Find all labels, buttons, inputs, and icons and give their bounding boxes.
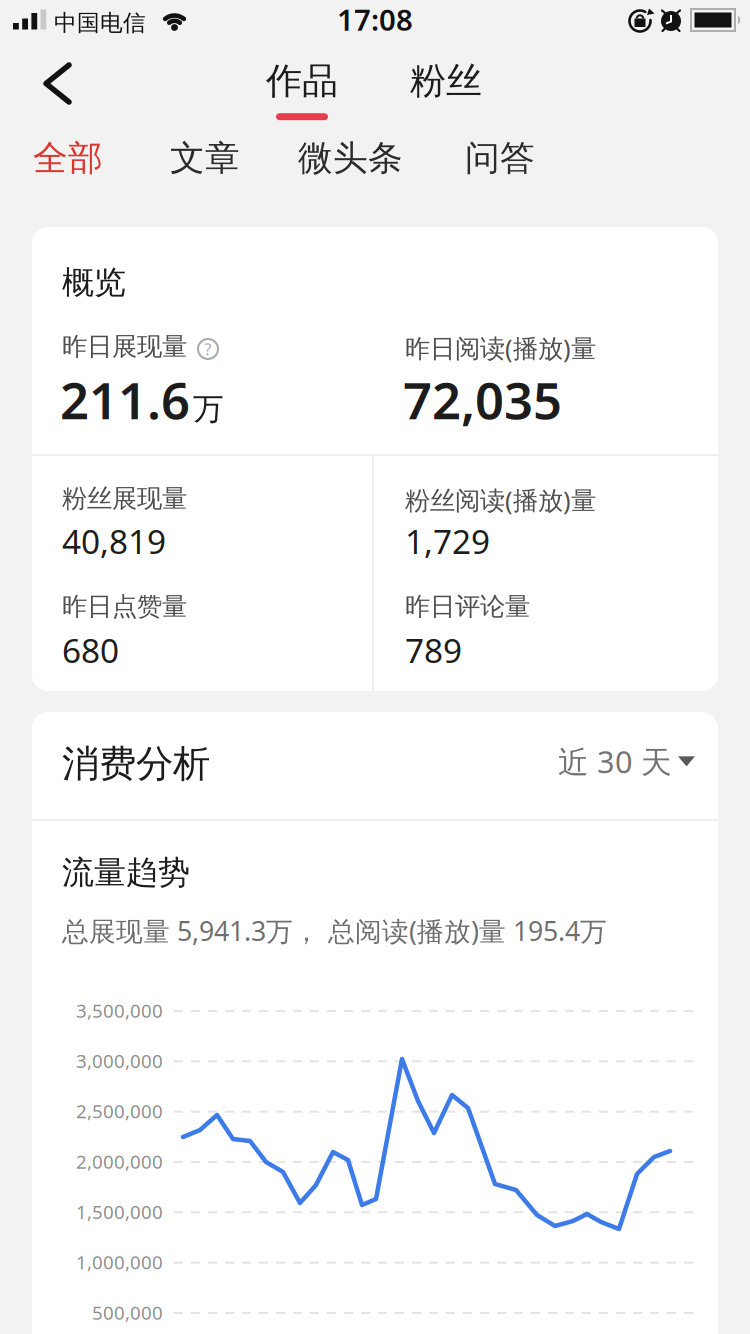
- staticText: 17:08: [337, 0, 413, 39]
- staticText: 72,035: [403, 366, 562, 433]
- staticText: 3,500,000: [76, 998, 163, 1023]
- staticText: 211.6: [60, 366, 190, 433]
- staticText: 500,000: [92, 1300, 163, 1325]
- button[interactable]: 微头条: [298, 137, 403, 180]
- button[interactable]: 问答: [465, 137, 535, 180]
- staticText: 粉丝展现量: [62, 483, 187, 514]
- button[interactable]: 文章: [170, 137, 240, 180]
- staticText: 1,000,000: [76, 1250, 163, 1274]
- button[interactable]: 粉丝: [410, 59, 482, 103]
- staticText: 粉丝: [410, 59, 482, 103]
- staticText: 1,729: [405, 519, 490, 563]
- staticText: 粉丝阅读(播放)量: [405, 483, 596, 517]
- button[interactable]: 近 30 天: [558, 741, 695, 782]
- staticText: 昨日阅读(播放)量: [405, 331, 596, 365]
- staticText: 中国电信: [54, 9, 146, 37]
- staticText: 680: [62, 628, 119, 672]
- staticText: 昨日展现量: [62, 331, 187, 362]
- staticText: 40,819: [62, 519, 166, 563]
- staticText: 2,000,000: [76, 1149, 163, 1174]
- staticText: 近 30 天: [558, 741, 672, 782]
- staticText: 流量趋势: [62, 853, 190, 892]
- staticText: 问答: [465, 137, 535, 180]
- staticText: 总展现量 5,941.3万， 总阅读(播放)量 195.4万: [62, 913, 607, 948]
- button[interactable]: Back: [40, 59, 72, 107]
- staticText: 全部: [33, 137, 103, 180]
- staticText: 概览: [62, 263, 126, 302]
- button[interactable]: 帮助: [197, 338, 219, 360]
- staticText: 作品: [266, 59, 338, 103]
- staticText: 消费分析: [62, 741, 210, 787]
- staticText: 1,500,000: [76, 1199, 163, 1224]
- staticText: 微头条: [298, 137, 403, 180]
- staticText: 3,000,000: [76, 1048, 163, 1073]
- staticText: ?: [204, 338, 211, 360]
- staticText: 昨日评论量: [405, 591, 530, 622]
- staticText: 昨日点赞量: [62, 591, 187, 622]
- button[interactable]: 全部: [33, 137, 103, 180]
- staticText: 789: [405, 628, 462, 672]
- staticText: 万: [193, 390, 224, 428]
- button[interactable]: 作品: [266, 59, 338, 120]
- staticText: 2,500,000: [76, 1099, 163, 1123]
- staticText: 文章: [170, 137, 240, 180]
